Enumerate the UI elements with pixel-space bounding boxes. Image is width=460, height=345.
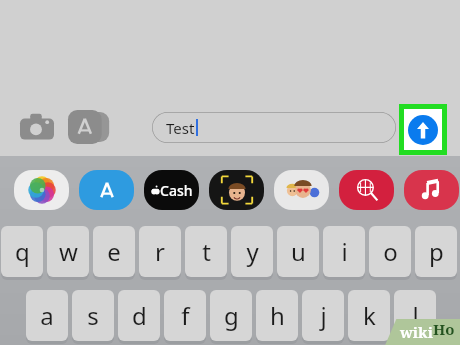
button[interactable]: h xyxy=(256,290,298,342)
staticText: q xyxy=(15,235,30,268)
button[interactable]: App 2 xyxy=(79,170,134,210)
staticText: l xyxy=(412,299,419,332)
button[interactable]: App 7 xyxy=(404,170,459,210)
button[interactable]: App Store xyxy=(68,110,110,144)
staticText: u xyxy=(291,235,306,268)
button[interactable]: App 6 xyxy=(339,170,394,210)
button[interactable]: t xyxy=(185,226,227,278)
button[interactable]: i xyxy=(323,226,365,278)
staticText: r xyxy=(155,235,165,268)
button[interactable]: s xyxy=(72,290,114,342)
staticText: a xyxy=(40,299,54,332)
button[interactable]: Send xyxy=(399,104,447,155)
button[interactable]: u xyxy=(277,226,319,278)
button[interactable]: f xyxy=(164,290,206,342)
button[interactable]: App 5 xyxy=(274,170,329,210)
staticText: j xyxy=(320,299,327,332)
staticText: How xyxy=(433,319,460,345)
staticText: h xyxy=(270,299,285,332)
staticText: k xyxy=(363,299,376,332)
button[interactable]: l xyxy=(394,290,436,342)
staticText: p xyxy=(429,235,444,268)
staticText: t xyxy=(202,235,211,268)
button[interactable]: q xyxy=(1,226,43,278)
button[interactable]: k xyxy=(348,290,390,342)
button[interactable]: w xyxy=(47,226,89,278)
staticText: wiki xyxy=(400,322,433,342)
staticText: i xyxy=(341,235,348,268)
button[interactable]: r xyxy=(139,226,181,278)
button[interactable]: y xyxy=(231,226,273,278)
staticText: e xyxy=(107,235,121,268)
button[interactable]: j xyxy=(302,290,344,342)
button[interactable]: p xyxy=(415,226,457,278)
staticText: d xyxy=(132,299,147,332)
staticText: o xyxy=(383,235,398,268)
staticText: Cash xyxy=(160,181,193,200)
button[interactable]: g xyxy=(210,290,252,342)
staticText: f xyxy=(181,299,190,332)
button[interactable]: o xyxy=(369,226,411,278)
staticText: s xyxy=(87,299,99,332)
button[interactable]: Test xyxy=(152,112,396,143)
button[interactable]: Camera xyxy=(20,112,54,142)
button[interactable]: e xyxy=(93,226,135,278)
staticText: g xyxy=(224,299,239,332)
staticText: Test xyxy=(166,118,195,138)
staticText: w xyxy=(59,235,78,268)
button[interactable]: App 3 xyxy=(144,170,199,210)
button[interactable]: a xyxy=(26,290,68,342)
button[interactable]: App 1 xyxy=(14,170,69,210)
button[interactable]: App 4 xyxy=(209,170,264,210)
button[interactable]: d xyxy=(118,290,160,342)
staticText: y xyxy=(246,235,259,268)
